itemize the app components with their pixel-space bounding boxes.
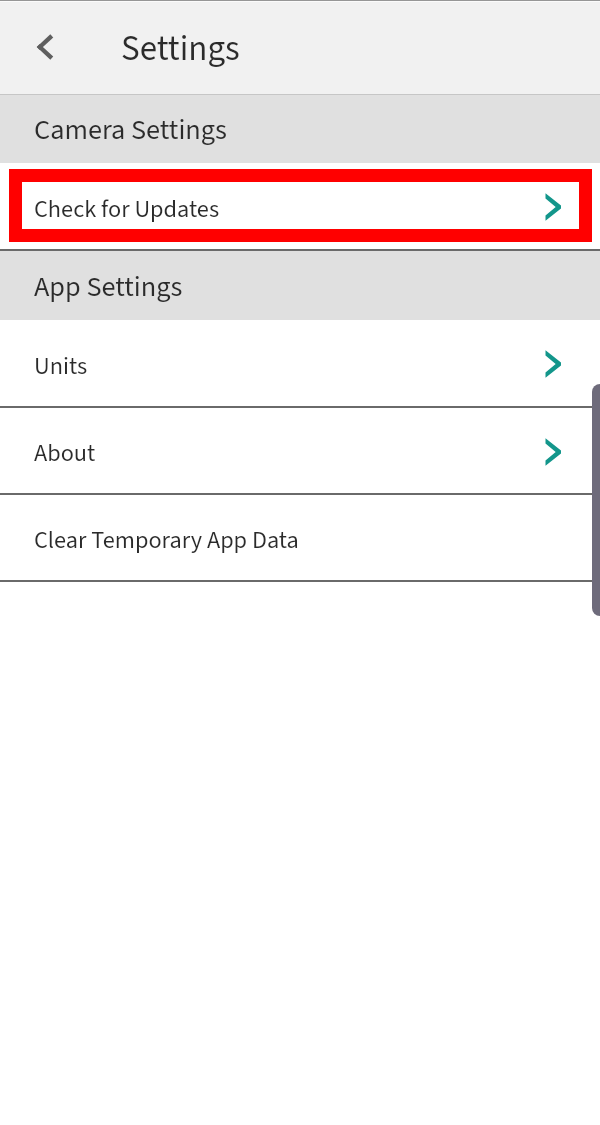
button[interactable]: Back xyxy=(21,23,69,71)
button[interactable]: About xyxy=(0,408,600,493)
button[interactable]: Units xyxy=(0,320,600,406)
button[interactable]: Check for Updates xyxy=(0,163,600,249)
staticText: Settings xyxy=(121,24,240,74)
staticText: Clear Temporary App Data xyxy=(34,523,299,558)
staticText: Units xyxy=(34,349,88,384)
staticText: Check for Updates xyxy=(34,192,220,227)
staticText: App Settings xyxy=(34,267,183,307)
staticText: About xyxy=(34,436,96,471)
staticText: Camera Settings xyxy=(34,110,227,150)
button[interactable]: Clear Temporary App Data xyxy=(0,495,600,580)
